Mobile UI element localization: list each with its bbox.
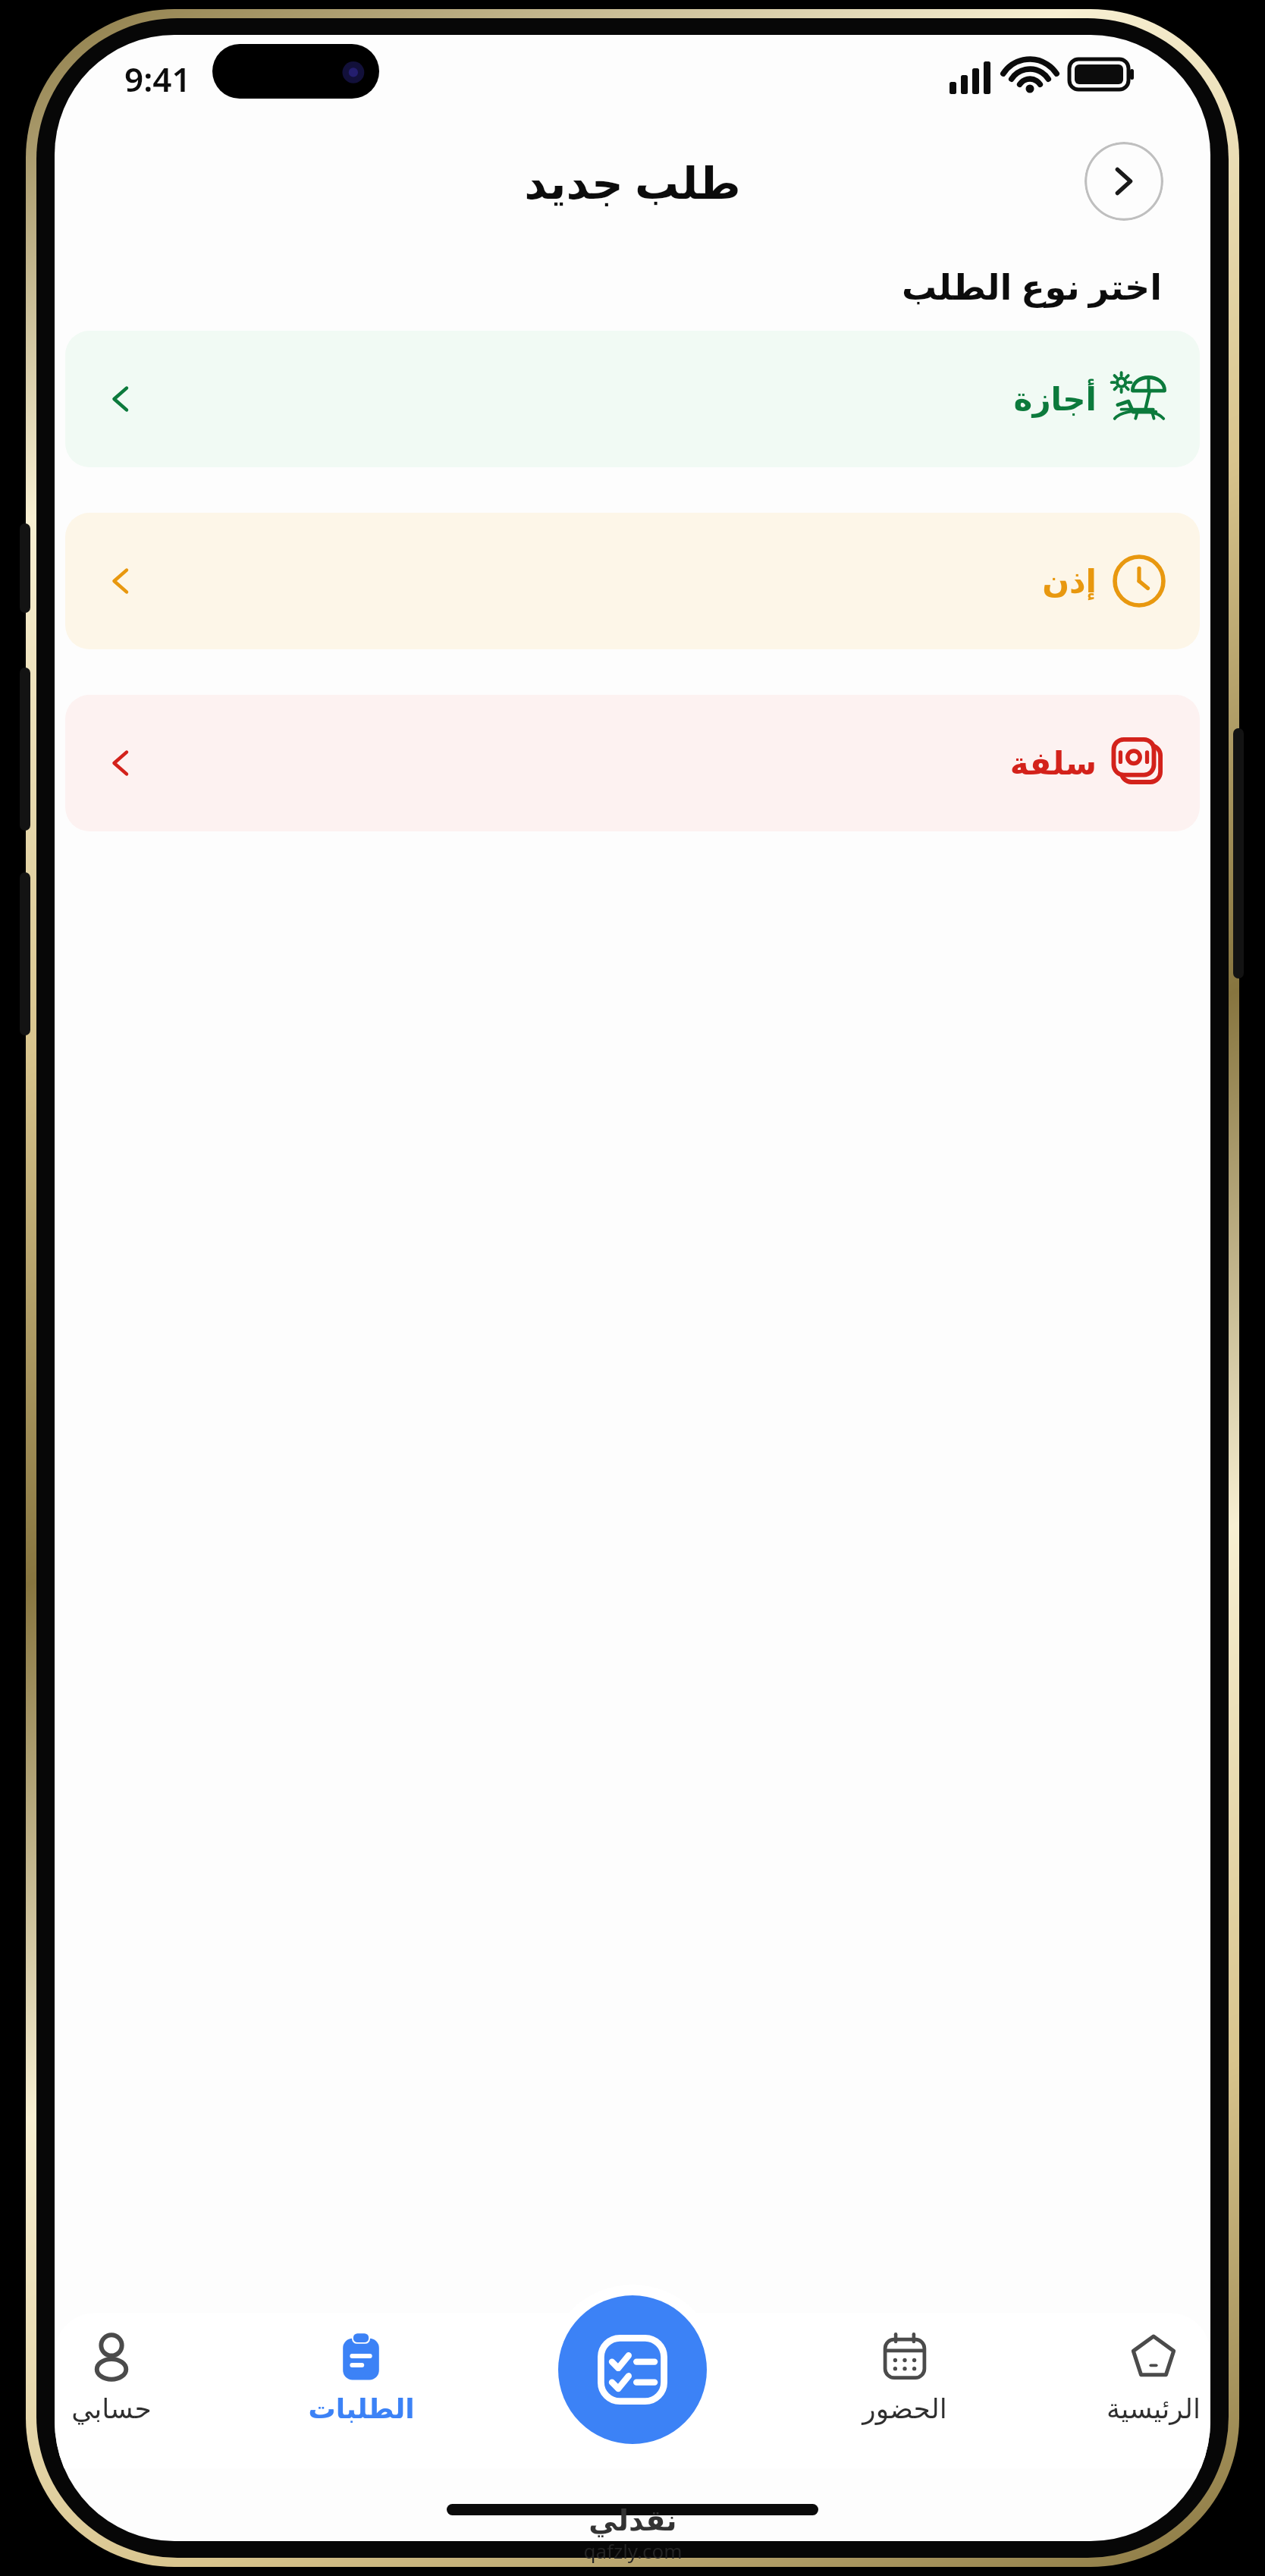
button[interactable]: الطلبات	[304, 2329, 418, 2427]
button[interactable]: التالي	[1085, 142, 1163, 221]
staticText: حسابي	[71, 2393, 152, 2425]
staticText: qafzly.com	[583, 2537, 683, 2564]
button[interactable]: إذن	[65, 513, 1200, 649]
staticText: سلفة	[1009, 745, 1097, 782]
staticText: الطلبات	[308, 2393, 415, 2425]
staticText: الرئيسية	[1106, 2393, 1201, 2425]
button[interactable]: الرئيسية	[1097, 2329, 1210, 2427]
button[interactable]: طلب جديد	[558, 2295, 707, 2444]
staticText: الحضور	[862, 2393, 947, 2425]
staticText: اختر نوع الطلب	[55, 262, 1162, 310]
staticText: إذن	[1042, 563, 1097, 600]
staticText: 9:41	[124, 56, 191, 102]
button[interactable]: الحضور	[848, 2329, 962, 2427]
staticText: نقدلي	[589, 2504, 677, 2537]
button[interactable]: أجازة	[65, 331, 1200, 467]
button[interactable]: سلفة	[65, 695, 1200, 831]
staticText: أجازة	[1013, 381, 1097, 418]
button[interactable]: حسابي	[55, 2329, 168, 2427]
staticText: طلب جديد	[524, 152, 741, 212]
